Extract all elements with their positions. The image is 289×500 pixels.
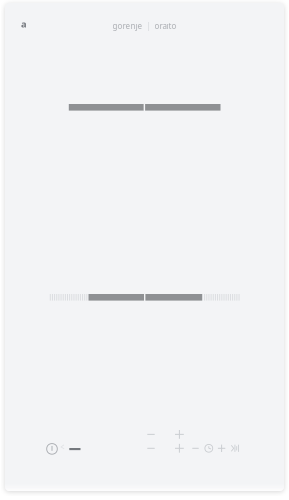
button[interactable]: Decrease left zone <box>141 427 160 442</box>
button[interactable]: Appliance menu <box>18 18 30 30</box>
button[interactable]: Left zone power slider <box>69 104 144 111</box>
staticText: a <box>21 18 27 30</box>
button[interactable]: Increase left zone <box>170 427 189 442</box>
staticText: | <box>142 21 154 31</box>
button[interactable]: Power <box>42 439 61 458</box>
button[interactable]: Power boost <box>228 441 241 456</box>
staticText: oraïto <box>154 21 176 31</box>
button[interactable]: Increase right zone <box>170 441 189 456</box>
button[interactable]: Decrease timer <box>189 441 202 456</box>
button[interactable]: Right zone power slider <box>145 104 220 111</box>
button[interactable]: Increase timer <box>215 441 228 456</box>
button[interactable]: Timer <box>202 441 215 456</box>
button[interactable]: Right zone power slider <box>145 294 202 301</box>
staticText: gorenje <box>112 21 142 31</box>
button[interactable]: Decrease right zone <box>141 441 160 456</box>
button[interactable]: Left zone power slider <box>88 294 144 301</box>
button[interactable]: Control lock <box>66 441 83 457</box>
